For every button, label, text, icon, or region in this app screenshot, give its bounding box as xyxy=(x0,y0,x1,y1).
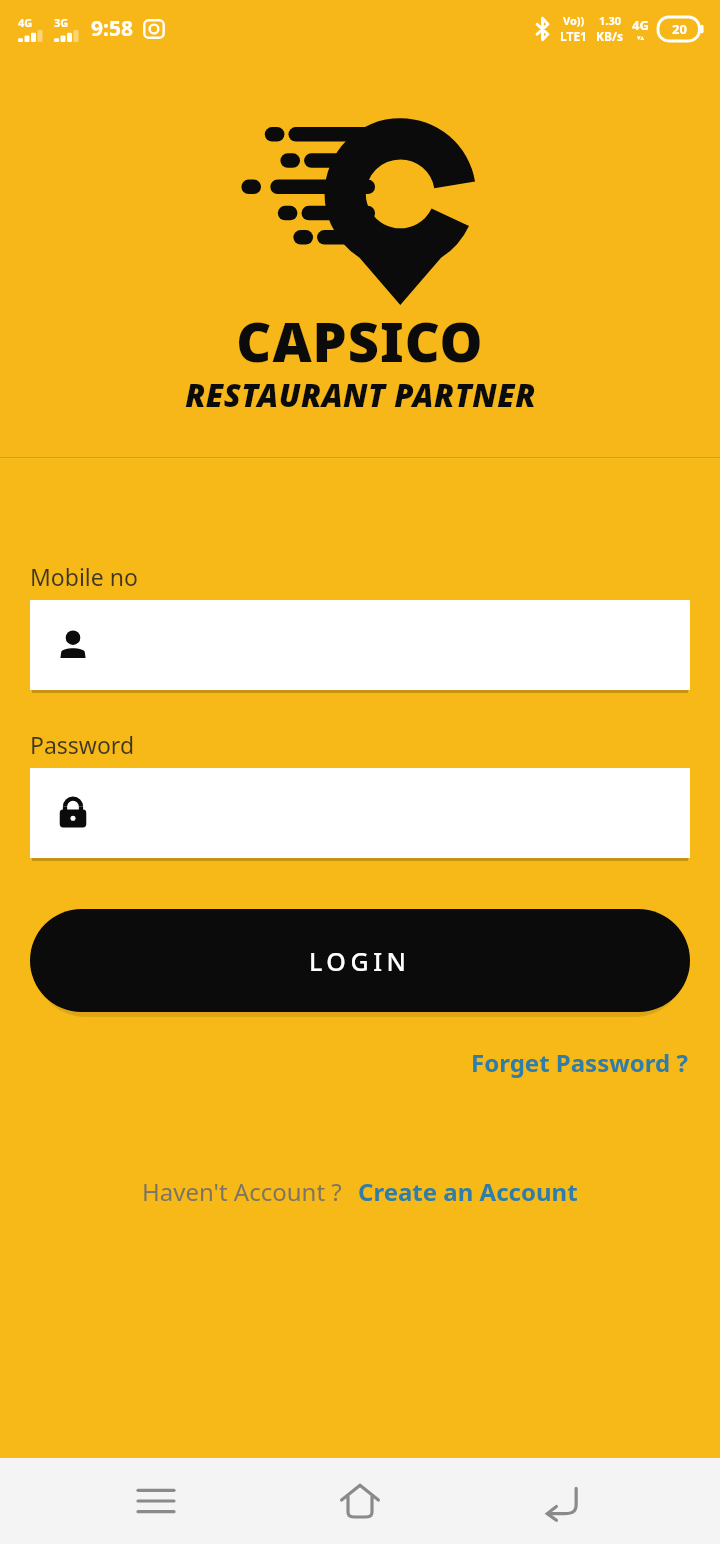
staticText: ▾▴ xyxy=(637,34,645,42)
staticText: Vo)) xyxy=(563,13,585,28)
staticText: 4G xyxy=(632,16,649,34)
button[interactable]: Recent apps xyxy=(108,1458,204,1544)
staticText: LOGIN xyxy=(309,944,411,978)
staticText: 1.30 xyxy=(599,13,621,28)
button[interactable]: LOGIN xyxy=(30,909,690,1012)
button[interactable]: Mobile number xyxy=(30,600,690,693)
staticText: Haven't Account ? xyxy=(142,1175,342,1208)
staticText: CAPSICO xyxy=(236,304,484,378)
staticText: 3G xyxy=(54,15,69,30)
staticText: 9:58 xyxy=(91,14,133,43)
staticText: 20 xyxy=(672,20,687,38)
staticText: RESTAURANT PARTNER xyxy=(185,374,536,416)
button[interactable]: Create an Account xyxy=(358,1169,578,1214)
staticText: Mobile no xyxy=(30,561,138,592)
button[interactable]: Back xyxy=(516,1458,612,1544)
staticText: KB/s xyxy=(596,28,623,44)
staticText: 4G xyxy=(18,15,33,30)
button[interactable]: Password xyxy=(30,768,690,861)
button[interactable]: Home xyxy=(312,1458,408,1544)
button[interactable]: Forget Password ? xyxy=(469,1040,690,1085)
staticText: Password xyxy=(30,729,135,760)
other: Mobile number xyxy=(56,628,90,662)
staticText: LTE1 xyxy=(560,28,587,44)
other: Password xyxy=(56,796,90,830)
